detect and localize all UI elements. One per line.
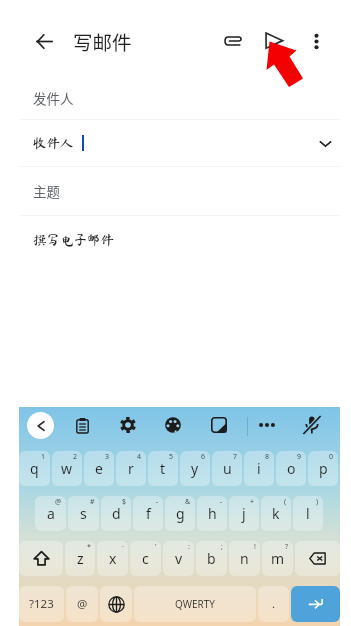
staticText: k <box>272 504 280 523</box>
staticText: p <box>319 459 328 478</box>
button[interactable]: Language <box>100 586 132 622</box>
button[interactable]: n <box>229 541 260 576</box>
staticText: ' <box>155 542 157 552</box>
staticText: @ <box>77 596 88 612</box>
button[interactable]: Shift <box>19 541 63 576</box>
staticText: y <box>191 459 199 478</box>
button[interactable]: Close keyboard <box>27 412 54 439</box>
button[interactable]: h <box>197 496 227 531</box>
button[interactable]: e <box>84 451 114 486</box>
button[interactable]: Attach file <box>216 24 250 58</box>
button[interactable]: t <box>148 451 178 486</box>
button[interactable]: x <box>97 541 128 576</box>
staticText: r <box>128 459 134 478</box>
button[interactable]: v <box>163 541 194 576</box>
button[interactable]: f <box>133 496 163 531</box>
staticText: w <box>61 459 73 478</box>
button[interactable]: Sticker <box>206 412 232 438</box>
staticText: 写邮件 <box>73 27 132 55</box>
staticText: z <box>77 549 84 568</box>
button[interactable]: b <box>196 541 227 576</box>
staticText: + <box>250 497 255 507</box>
button[interactable]: 撰写电子邮件 <box>0 216 351 264</box>
button[interactable]: Voice input off <box>299 412 325 438</box>
button[interactable]: Enter <box>291 586 340 622</box>
button[interactable]: . <box>258 586 289 622</box>
staticText: 3 <box>105 452 110 462</box>
button[interactable]: ?123 <box>19 586 64 622</box>
button[interactable]: o <box>276 451 306 486</box>
button[interactable]: Clipboard <box>69 412 95 438</box>
staticText: m <box>271 549 285 568</box>
button[interactable]: Theme <box>160 412 186 438</box>
staticText: 撰写电子邮件 <box>33 233 114 247</box>
button[interactable]: QWERTY <box>134 586 256 622</box>
button[interactable]: 发件人 <box>0 76 351 119</box>
button[interactable]: g <box>165 496 195 531</box>
staticText: ; <box>221 542 223 552</box>
button[interactable]: s <box>68 496 99 531</box>
button[interactable]: a <box>35 496 66 531</box>
staticText: b <box>207 549 216 568</box>
staticText: - <box>156 497 159 507</box>
button[interactable]: Expand recipients <box>311 129 339 157</box>
button[interactable]: q <box>19 451 50 486</box>
staticText: i <box>257 459 261 478</box>
button[interactable]: k <box>261 496 291 531</box>
staticText: . <box>272 596 276 612</box>
staticText: @ <box>55 497 62 507</box>
staticText: QWERTY <box>175 597 216 611</box>
staticText: 5 <box>169 452 174 462</box>
staticText: a <box>47 504 55 523</box>
button[interactable]: 收件人 <box>0 120 351 166</box>
button[interactable]: More options <box>299 24 333 58</box>
staticText: v <box>175 549 183 568</box>
staticText: & <box>185 497 191 507</box>
staticText: * <box>87 542 91 552</box>
button[interactable]: 主题 <box>0 167 351 215</box>
staticText: 4 <box>137 452 142 462</box>
staticText: 7 <box>233 452 238 462</box>
staticText: c <box>142 549 149 568</box>
staticText: j <box>242 504 246 523</box>
staticText: 发件人 <box>33 88 74 108</box>
staticText: u <box>223 459 232 478</box>
button[interactable]: y <box>180 451 210 486</box>
staticText: 9 <box>297 452 302 462</box>
staticText: x <box>109 549 117 568</box>
staticText: 0 <box>329 452 334 462</box>
staticText: 2 <box>73 452 78 462</box>
button[interactable]: Backspace <box>295 541 340 576</box>
staticText: h <box>208 504 217 523</box>
staticText: ) <box>316 497 319 507</box>
staticText: : <box>188 542 190 552</box>
button[interactable]: l <box>293 496 323 531</box>
staticText: e <box>95 459 103 478</box>
button[interactable]: Send <box>257 24 291 58</box>
staticText: s <box>80 504 87 523</box>
button[interactable]: j <box>229 496 259 531</box>
button[interactable]: More <box>254 412 280 438</box>
button[interactable]: w <box>52 451 82 486</box>
staticText: t <box>160 459 166 478</box>
button[interactable]: Back <box>26 23 62 59</box>
button[interactable]: p <box>308 451 338 486</box>
staticText: 1 <box>41 452 46 462</box>
staticText: 主题 <box>33 181 60 201</box>
staticText: 6 <box>201 452 206 462</box>
button[interactable]: z <box>65 541 95 576</box>
staticText: ?123 <box>29 596 54 612</box>
button[interactable]: m <box>262 541 293 576</box>
button[interactable]: r <box>116 451 146 486</box>
staticText: q <box>30 459 39 478</box>
button[interactable]: i <box>244 451 274 486</box>
button[interactable]: @ <box>66 586 98 622</box>
button[interactable]: u <box>212 451 242 486</box>
staticText: · <box>122 542 124 552</box>
staticText: 收件人 <box>33 136 74 150</box>
button[interactable]: c <box>130 541 161 576</box>
staticText: $ <box>122 497 127 507</box>
button[interactable]: Settings <box>115 412 141 438</box>
staticText: 8 <box>265 452 270 462</box>
button[interactable]: d <box>101 496 131 531</box>
